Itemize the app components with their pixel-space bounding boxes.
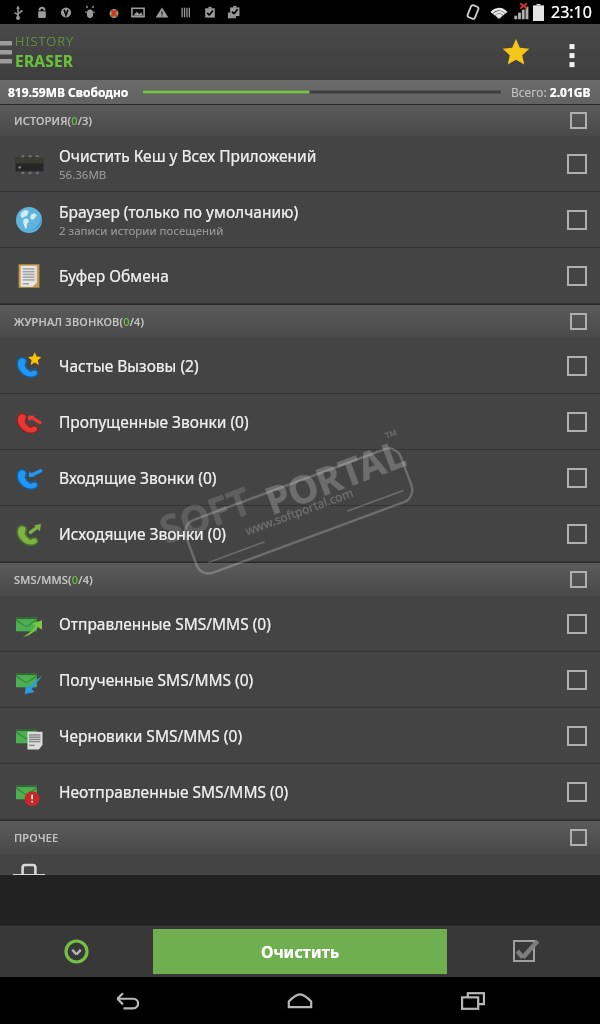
staticText: Черновики SMS/MMS (0): [59, 725, 243, 746]
staticText: ERASER: [15, 50, 74, 71]
staticText: Пропущенные Звонки (0): [59, 411, 249, 432]
staticText: Входящие Звонки (0): [59, 467, 217, 488]
button[interactable]: Частые Вызовы (2): [0, 338, 600, 393]
staticText: HISTORY: [15, 32, 74, 50]
staticText: Полученные SMS/MMS (0): [59, 669, 254, 690]
button[interactable]: Исходящие Звонки (0): [0, 506, 600, 561]
staticText: 819.59MB Свободно: [8, 84, 129, 100]
staticText: Частые Вызовы (2): [59, 355, 199, 376]
staticText: 56.36MB: [59, 167, 107, 183]
staticText: ПРОЧЕЕ: [14, 830, 59, 845]
staticText: ИСТОРИЯ(0/3): [14, 113, 93, 128]
staticText: 23:10: [551, 1, 592, 23]
staticText: Неотправленные SMS/MMS (0): [59, 781, 289, 802]
button[interactable]: Черновики SMS/MMS (0): [0, 708, 600, 763]
staticText: Браузер (только по умолчанию): [59, 201, 299, 222]
staticText: Отправленные SMS/MMS (0): [59, 613, 271, 634]
staticText: www.softportal.com: [243, 484, 355, 538]
button[interactable]: Favorite: [492, 28, 540, 76]
staticText: Буфер Обмена: [59, 265, 169, 286]
staticText: PORTAL: [257, 426, 412, 526]
staticText: 2 записи истории посещений: [59, 223, 224, 239]
button[interactable]: Recents: [428, 977, 518, 1024]
staticText: SOFT: [152, 473, 258, 555]
staticText: TM: [383, 426, 399, 441]
staticText: SMS/MMS(0/4): [14, 572, 93, 587]
button[interactable]: ЖУРНАЛ ЗВОНКОВ(0/4): [0, 304, 600, 338]
button[interactable]: ИСТОРИЯ(0/3): [0, 104, 600, 136]
button[interactable]: Полученные SMS/MMS (0): [0, 652, 600, 707]
button[interactable]: Браузер (только по умолчанию): [0, 192, 600, 247]
staticText: Исходящие Звонки (0): [59, 523, 226, 544]
button[interactable]: Select all: [447, 925, 600, 977]
staticText: Всего: 2.01GB: [511, 84, 591, 100]
button[interactable]: Неотправленные SMS/MMS (0): [0, 764, 600, 819]
button[interactable]: Очистить Кеш у Всех Приложений: [0, 136, 600, 191]
button[interactable]: Home: [255, 977, 345, 1024]
button[interactable]: Пропущенные Звонки (0): [0, 394, 600, 449]
button[interactable]: More options: [554, 34, 590, 70]
button[interactable]: Отправленные SMS/MMS (0): [0, 596, 600, 651]
staticText: Очистить: [261, 941, 340, 963]
button[interactable]: Буфер Обмена: [0, 248, 600, 303]
staticText: ЖУРНАЛ ЗВОНКОВ(0/4): [14, 314, 145, 329]
button[interactable]: Expand: [0, 925, 153, 977]
button[interactable]: ПРОЧЕЕ: [0, 820, 600, 854]
button[interactable]: Back: [83, 977, 173, 1024]
button[interactable]: Приложения: [0, 854, 600, 875]
staticText: Очистить Кеш у Всех Приложений: [59, 145, 317, 166]
button[interactable]: Входящие Звонки (0): [0, 450, 600, 505]
button[interactable]: Очистить: [153, 929, 447, 974]
button[interactable]: SMS/MMS(0/4): [0, 562, 600, 596]
